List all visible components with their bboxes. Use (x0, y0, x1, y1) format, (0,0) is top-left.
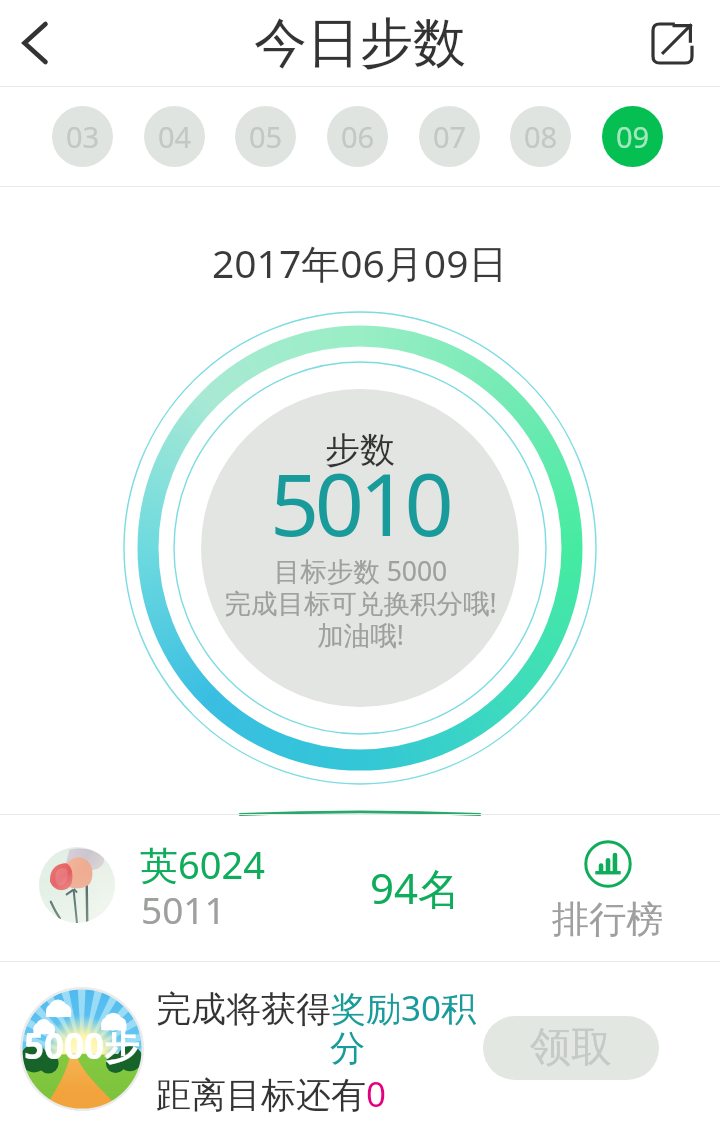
staticText: 08 (524, 117, 558, 156)
staticText: 04 (158, 117, 192, 156)
button[interactable]: 领取 (483, 1016, 659, 1080)
staticText: 今日步数 (254, 10, 466, 77)
staticText: 步数 (325, 428, 395, 472)
button[interactable]: 英6024 (0, 815, 720, 961)
button[interactable]: 04 (144, 106, 205, 167)
staticText: 5011 (141, 884, 226, 934)
staticText: 完成将获得奖励30积 (156, 984, 477, 1032)
button[interactable]: 09 (602, 106, 663, 167)
staticText: 分 (330, 1026, 365, 1070)
button[interactable]: 排行榜 (540, 840, 675, 943)
staticText: 05 (249, 117, 283, 156)
staticText: 94名 (370, 859, 461, 916)
staticText: 06 (341, 117, 375, 156)
staticText: 5000步 (24, 1022, 140, 1070)
staticText: 目标步数 5000 完成目标可兑换积分哦! 加油哦! (224, 553, 497, 653)
button[interactable]: 05 (235, 106, 296, 167)
button[interactable]: 03 (52, 106, 113, 167)
staticText: 5010 (270, 444, 450, 561)
button[interactable]: 08 (510, 106, 571, 167)
staticText: 距离目标还有0 (156, 1070, 387, 1118)
staticText: 英6024 (140, 838, 265, 890)
button[interactable]: 06 (327, 106, 388, 167)
staticText: 09 (616, 117, 650, 156)
staticText: 07 (433, 117, 467, 156)
button[interactable]: Share (640, 11, 704, 75)
staticText: 领取 (530, 1022, 612, 1074)
staticText: 2017年06月09日 (212, 236, 508, 289)
button[interactable]: Back (6, 11, 70, 75)
button[interactable]: 07 (419, 106, 480, 167)
staticText: 排行榜 (552, 896, 663, 943)
staticText: 03 (66, 117, 100, 156)
